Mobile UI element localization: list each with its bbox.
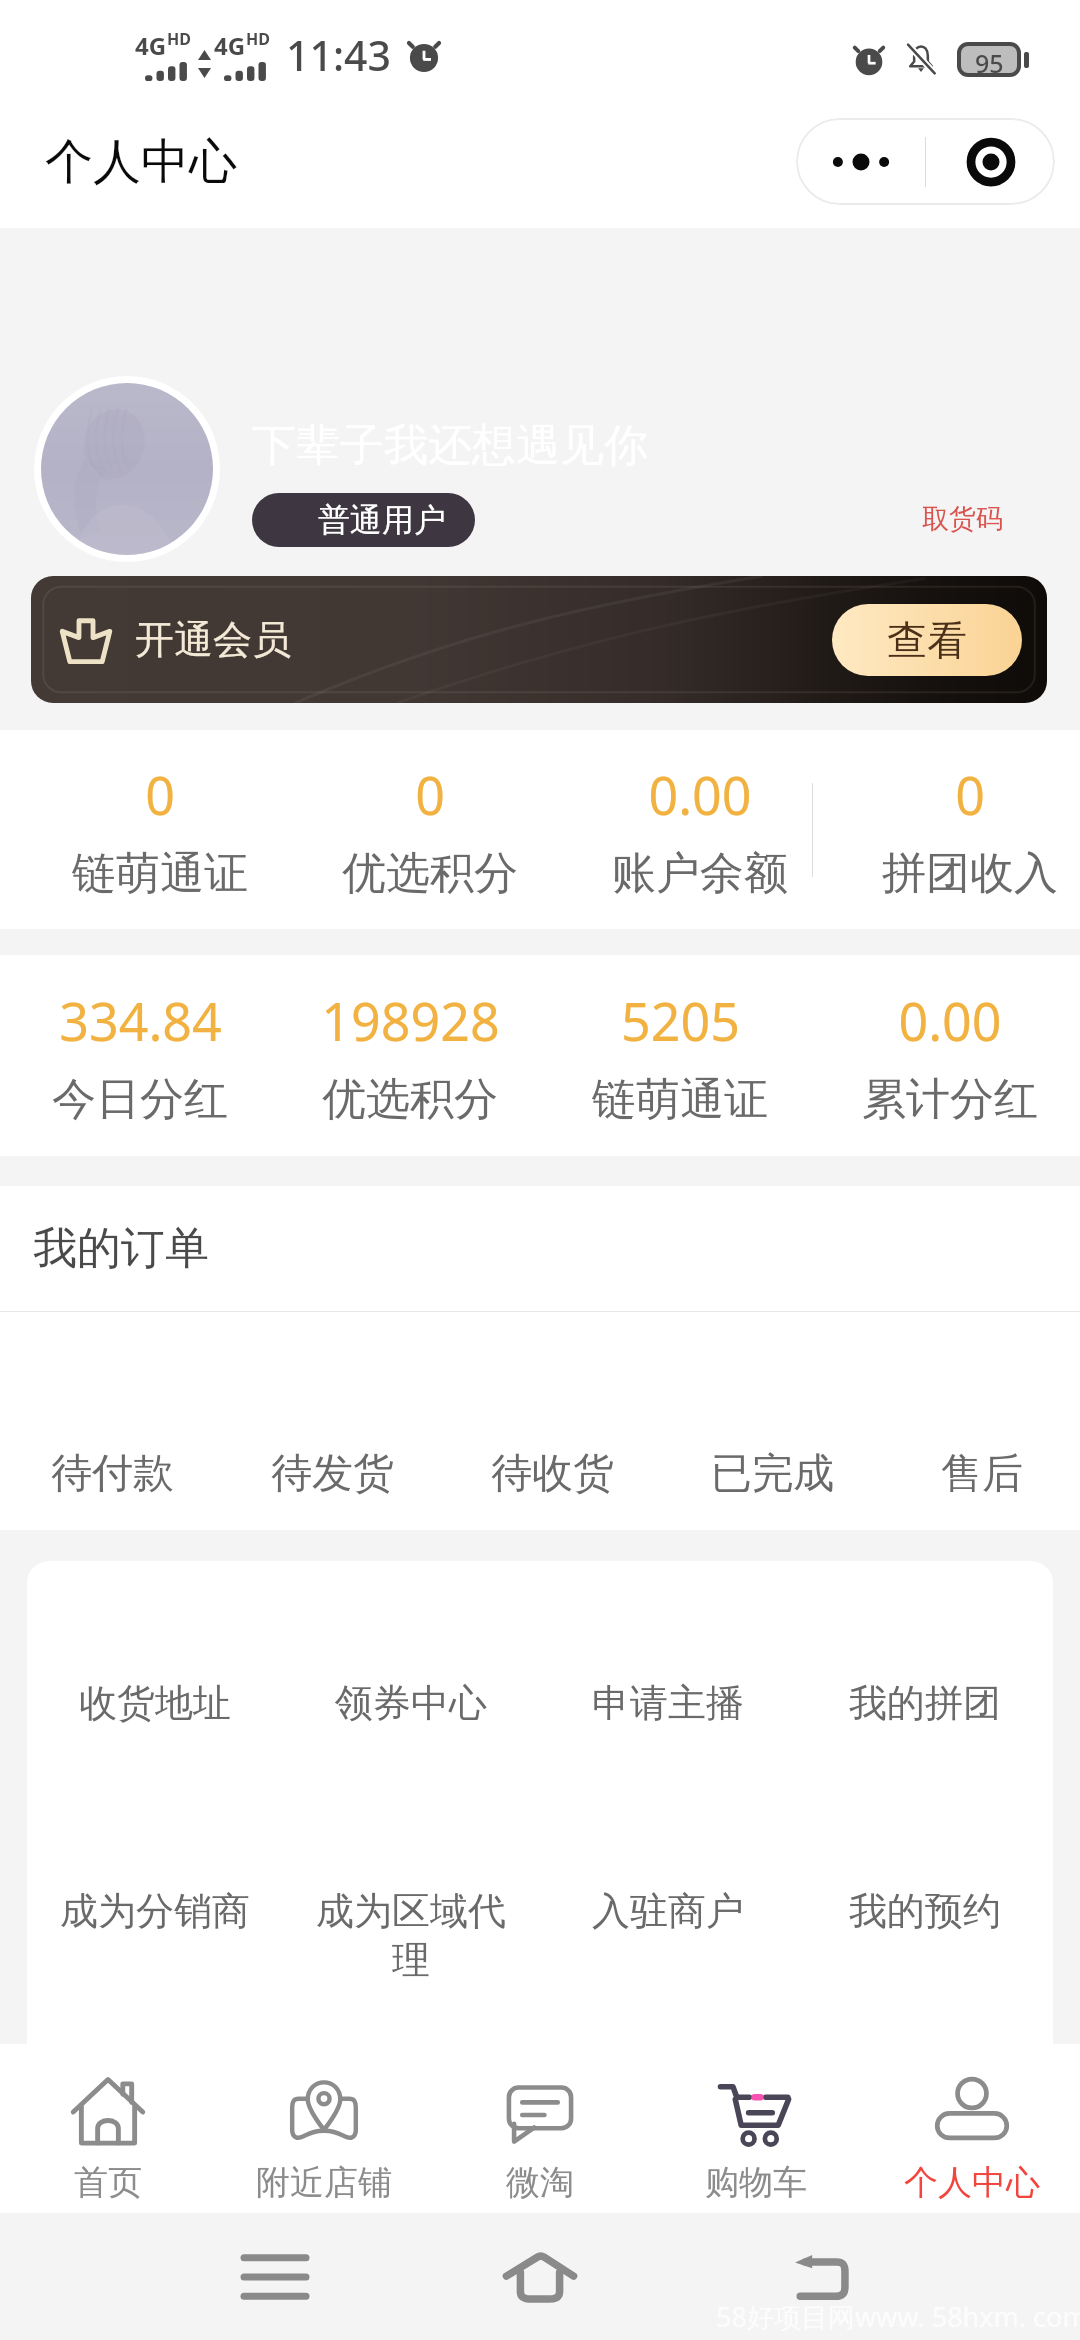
staticText: 已完成 bbox=[711, 1448, 834, 1500]
staticText: 下辈子我还想遇见你 bbox=[252, 418, 648, 473]
button[interactable]: 收货地址 bbox=[27, 1679, 283, 1741]
staticText: 我的订单 bbox=[33, 1221, 209, 1276]
staticText: 0 bbox=[415, 759, 445, 830]
button[interactable]: 成为区域代理 bbox=[283, 1887, 539, 2007]
staticText: 待发货 bbox=[271, 1448, 394, 1500]
staticText: 微淘 bbox=[506, 2161, 574, 2204]
button[interactable]: 个人中心 bbox=[864, 2044, 1080, 2213]
staticText: 58好项目网www. 58hxm. com bbox=[716, 2298, 1080, 2335]
staticText: 售后 bbox=[941, 1448, 1023, 1500]
staticText: 0.00 bbox=[648, 759, 752, 830]
button[interactable]: 5205 bbox=[545, 955, 815, 1156]
staticText: 个人中心 bbox=[904, 2161, 1040, 2204]
button[interactable]: 附近店铺 bbox=[216, 2044, 432, 2213]
staticText: 普通用户 bbox=[318, 500, 446, 540]
button[interactable]: 334.84 bbox=[5, 955, 275, 1156]
staticText: 我的预约 bbox=[849, 1887, 1001, 1935]
staticText: 4G bbox=[214, 29, 246, 62]
staticText: 链萌通证 bbox=[72, 846, 248, 901]
button[interactable]: 入驻商户 bbox=[539, 1887, 796, 2007]
button[interactable]: Profile photo bbox=[41, 383, 213, 555]
staticText: 成为区域代理 bbox=[312, 1887, 510, 1985]
staticText: 首页 bbox=[74, 2161, 142, 2204]
button[interactable]: 0 bbox=[835, 730, 1080, 929]
button[interactable]: 待付款 bbox=[2, 1312, 222, 1530]
staticText: 198928 bbox=[321, 985, 500, 1056]
staticText: 链萌通证 bbox=[592, 1072, 768, 1127]
button[interactable]: 普通用户 bbox=[252, 493, 475, 547]
button[interactable]: 成为分销商 bbox=[27, 1887, 283, 2007]
button[interactable]: 首页 bbox=[0, 2044, 216, 2213]
staticText: 待收货 bbox=[491, 1448, 614, 1500]
button[interactable]: More options bbox=[796, 118, 925, 205]
staticText: 0 bbox=[145, 759, 175, 830]
button[interactable]: Recent apps bbox=[230, 2232, 320, 2322]
button[interactable]: 开通会员 bbox=[31, 576, 1047, 703]
staticText: 取货码 bbox=[922, 502, 1003, 536]
staticText: 95 bbox=[975, 46, 1004, 73]
staticText: 账户余额 bbox=[612, 846, 788, 901]
staticText: 5205 bbox=[621, 985, 740, 1056]
staticText: 个人中心 bbox=[45, 132, 237, 192]
button[interactable]: 0.00 bbox=[565, 730, 835, 929]
staticText: 优选积分 bbox=[322, 1072, 498, 1127]
button[interactable]: Back bbox=[775, 2232, 865, 2322]
staticText: 拼团收入 bbox=[882, 846, 1058, 901]
staticText: 开通会员 bbox=[135, 615, 291, 664]
button[interactable]: 0 bbox=[295, 730, 565, 929]
staticText: 0 bbox=[955, 759, 985, 830]
button[interactable]: 待发货 bbox=[222, 1312, 442, 1530]
button[interactable]: 我的拼团 bbox=[796, 1679, 1053, 1741]
staticText: 11:43 bbox=[286, 27, 391, 83]
button[interactable]: 我的预约 bbox=[796, 1887, 1053, 2007]
staticText: 0.00 bbox=[898, 985, 1002, 1056]
staticText: 申请主播 bbox=[592, 1679, 744, 1727]
button[interactable]: 0.00 bbox=[815, 955, 1080, 1156]
staticText: 领券中心 bbox=[335, 1679, 487, 1727]
button[interactable]: 已完成 bbox=[662, 1312, 882, 1530]
staticText: 累计分红 bbox=[862, 1072, 1038, 1127]
button[interactable]: 我的订单 bbox=[0, 1186, 1080, 1311]
staticText: HD bbox=[246, 28, 270, 50]
button[interactable]: 待收货 bbox=[442, 1312, 662, 1530]
button[interactable]: 取货码 bbox=[910, 490, 1015, 548]
staticText: 入驻商户 bbox=[592, 1887, 744, 1935]
button[interactable]: 领券中心 bbox=[283, 1679, 539, 1741]
button[interactable]: 0 bbox=[25, 730, 295, 929]
button[interactable]: 申请主播 bbox=[539, 1679, 796, 1741]
staticText: HD bbox=[167, 28, 191, 50]
button[interactable]: 购物车 bbox=[648, 2044, 864, 2213]
staticText: 待付款 bbox=[51, 1448, 174, 1500]
button[interactable]: 售后 bbox=[882, 1312, 1080, 1530]
staticText: 附近店铺 bbox=[256, 2161, 392, 2204]
button[interactable]: Close mini program bbox=[926, 118, 1055, 205]
staticText: 查看 bbox=[887, 615, 967, 665]
staticText: 今日分红 bbox=[52, 1072, 228, 1127]
staticText: 购物车 bbox=[705, 2161, 807, 2204]
button[interactable]: Home bbox=[495, 2232, 585, 2322]
button[interactable]: 198928 bbox=[275, 955, 545, 1156]
staticText: 优选积分 bbox=[342, 846, 518, 901]
staticText: 4G bbox=[135, 29, 167, 62]
staticText: 收货地址 bbox=[79, 1679, 231, 1727]
button[interactable]: 查看 bbox=[832, 604, 1022, 676]
staticText: 成为分销商 bbox=[60, 1887, 250, 1935]
staticText: 我的拼团 bbox=[849, 1679, 1001, 1727]
staticText: 334.84 bbox=[59, 985, 222, 1056]
button[interactable]: 微淘 bbox=[432, 2044, 648, 2213]
